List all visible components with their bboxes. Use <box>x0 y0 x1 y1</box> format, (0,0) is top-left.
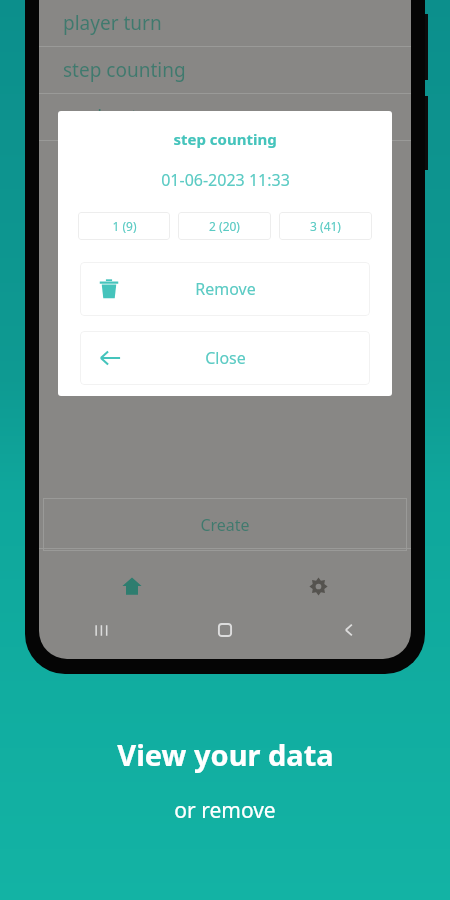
staticText: or remove <box>174 796 276 825</box>
button[interactable]: Close <box>80 331 370 385</box>
staticText: 1 (9) <box>112 218 137 234</box>
staticText: View your data <box>117 735 334 774</box>
staticText: Remove <box>195 278 256 300</box>
button[interactable]: Home <box>39 556 225 616</box>
staticText: Create <box>200 514 250 536</box>
staticText: 2 (20) <box>209 218 240 234</box>
button[interactable]: player turn <box>39 0 411 47</box>
button[interactable]: Settings <box>225 556 411 616</box>
button[interactable]: workout <box>39 94 411 141</box>
button[interactable]: 1 (9) <box>78 212 170 240</box>
staticText: step counting <box>63 57 186 83</box>
staticText: 3 (41) <box>310 218 341 234</box>
button[interactable]: Create <box>43 498 407 551</box>
button[interactable]: Remove <box>80 262 370 316</box>
staticText: 01-06-2023 11:33 <box>161 169 290 191</box>
button[interactable]: 3 (41) <box>279 212 372 240</box>
button[interactable]: step counting <box>39 47 411 94</box>
staticText: player turn <box>63 10 162 36</box>
staticText: Close <box>205 347 246 369</box>
staticText: workout <box>63 104 138 130</box>
button[interactable]: 2 (20) <box>178 212 271 240</box>
staticText: step counting <box>173 129 277 149</box>
